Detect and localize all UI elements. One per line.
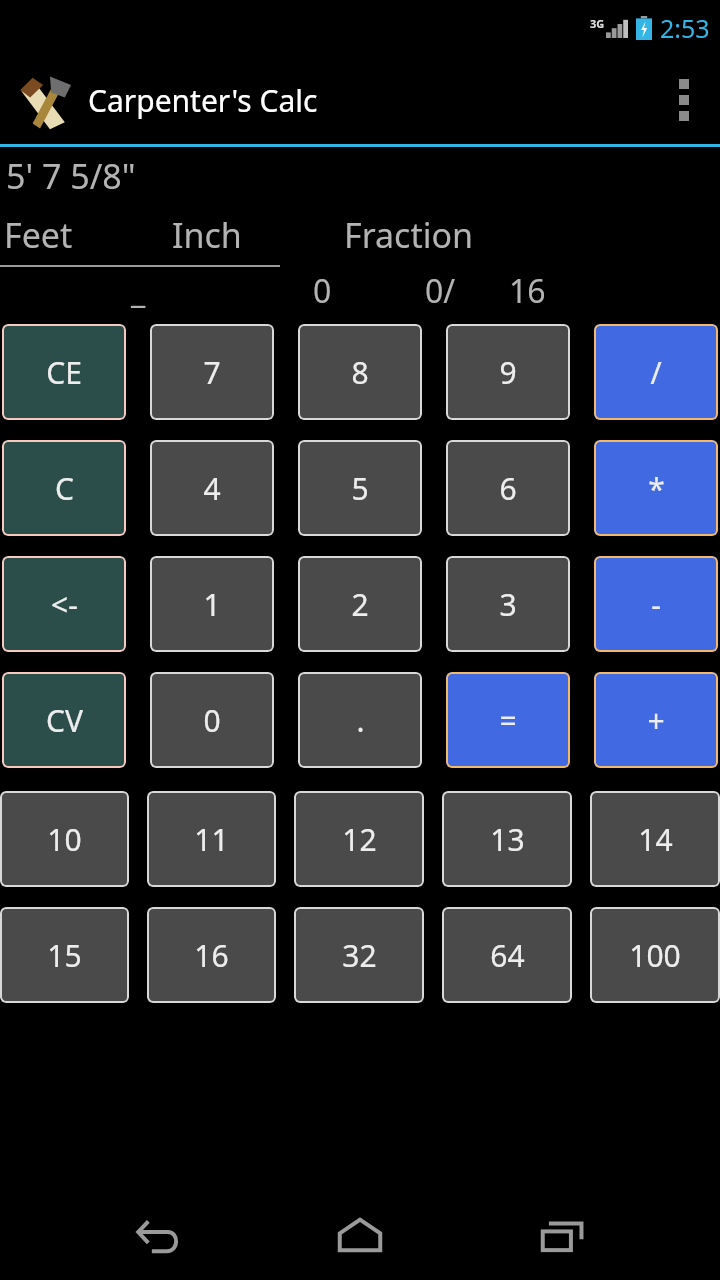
- staticText: 9: [499, 352, 517, 393]
- button[interactable]: +: [594, 672, 718, 768]
- button[interactable]: /: [594, 324, 718, 420]
- staticText: 11: [194, 819, 229, 860]
- button[interactable]: 5: [298, 440, 422, 536]
- staticText: 100: [629, 935, 681, 976]
- button[interactable]: Home: [315, 1190, 405, 1280]
- button[interactable]: 8: [298, 324, 422, 420]
- button[interactable]: 13: [442, 791, 572, 887]
- button[interactable]: 64: [442, 907, 572, 1003]
- button[interactable]: 4: [150, 440, 274, 536]
- button[interactable]: 2: [298, 556, 422, 652]
- button[interactable]: -: [594, 556, 718, 652]
- button[interactable]: 11: [147, 791, 276, 887]
- staticText: 16: [194, 935, 229, 976]
- button[interactable]: 32: [294, 907, 424, 1003]
- button[interactable]: 7: [150, 324, 274, 420]
- button[interactable]: <-: [2, 556, 126, 652]
- button[interactable]: 100: [590, 907, 720, 1003]
- staticText: +: [647, 700, 665, 741]
- button[interactable]: More options: [648, 56, 720, 144]
- button[interactable]: 6: [446, 440, 570, 536]
- staticText: C: [55, 468, 74, 509]
- button[interactable]: 0: [150, 672, 274, 768]
- staticText: -: [651, 584, 661, 625]
- staticText: 14: [638, 819, 673, 860]
- button[interactable]: 15: [0, 907, 129, 1003]
- button[interactable]: 3: [446, 556, 570, 652]
- button[interactable]: 16: [147, 907, 276, 1003]
- button[interactable]: Back: [113, 1190, 203, 1280]
- staticText: 6: [499, 468, 517, 509]
- staticText: 1: [203, 584, 221, 625]
- button[interactable]: 10: [0, 791, 129, 887]
- button[interactable]: Recent apps: [518, 1190, 608, 1280]
- staticText: =: [499, 700, 517, 741]
- button[interactable]: C: [2, 440, 126, 536]
- staticText: Fraction: [344, 212, 474, 258]
- button[interactable]: =: [446, 672, 570, 768]
- staticText: 5: [351, 468, 369, 509]
- staticText: 64: [490, 935, 525, 976]
- staticText: 10: [47, 819, 82, 860]
- button[interactable]: 12: [294, 791, 424, 887]
- button[interactable]: 14: [590, 791, 720, 887]
- button[interactable]: CE: [2, 324, 126, 420]
- staticText: 0: [313, 269, 332, 313]
- staticText: *: [648, 468, 665, 509]
- staticText: 12: [342, 819, 377, 860]
- staticText: 15: [47, 935, 82, 976]
- staticText: 13: [490, 819, 525, 860]
- staticText: Carpenter's Calc: [88, 80, 318, 121]
- staticText: 5' 7 5/8": [6, 153, 136, 199]
- staticText: 32: [342, 935, 377, 976]
- staticText: <-: [51, 584, 78, 625]
- staticText: 0: [203, 700, 221, 741]
- staticText: Inch: [172, 212, 242, 258]
- staticText: 7: [203, 352, 221, 393]
- button[interactable]: 9: [446, 324, 570, 420]
- staticText: 2:53: [660, 11, 710, 45]
- button[interactable]: CV: [2, 672, 126, 768]
- button[interactable]: 1: [150, 556, 274, 652]
- staticText: .: [356, 700, 365, 741]
- staticText: 2: [351, 584, 369, 625]
- staticText: CE: [46, 352, 82, 393]
- staticText: _: [131, 269, 146, 313]
- staticText: CV: [46, 700, 83, 741]
- staticText: Feet: [4, 212, 73, 258]
- button[interactable]: .: [298, 672, 422, 768]
- staticText: 3G: [590, 16, 605, 31]
- staticText: /: [650, 352, 662, 393]
- button[interactable]: *: [594, 440, 718, 536]
- staticText: 0/: [425, 269, 456, 313]
- staticText: 8: [351, 352, 369, 393]
- staticText: 16: [509, 269, 546, 313]
- staticText: 4: [203, 468, 221, 509]
- staticText: 3: [499, 584, 517, 625]
